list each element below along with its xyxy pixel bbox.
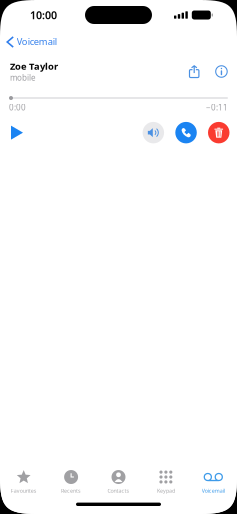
staticText: −0:11 xyxy=(206,102,228,113)
button[interactable]: Voicemail xyxy=(0,30,65,52)
staticText: mobile xyxy=(10,72,36,83)
staticText: 10:00 xyxy=(30,8,57,22)
staticText: 0:00 xyxy=(9,102,26,113)
button[interactable]: Speaker xyxy=(143,122,164,143)
button[interactable]: Play xyxy=(5,121,29,145)
button[interactable]: Favourites xyxy=(0,468,47,495)
staticText: Voicemail xyxy=(202,487,225,494)
staticText: Contacts xyxy=(107,487,129,494)
button[interactable]: Recents xyxy=(47,468,95,495)
button[interactable]: Delete xyxy=(208,122,229,143)
button[interactable]: Keypad xyxy=(142,468,190,495)
staticText: Recents xyxy=(61,487,81,494)
button[interactable]: Voicemail xyxy=(190,468,237,495)
staticText: Keypad xyxy=(157,487,175,494)
staticText: Favourites xyxy=(11,487,37,494)
button[interactable]: Call back xyxy=(175,122,197,143)
button[interactable]: Contacts xyxy=(95,468,142,495)
button[interactable]: Details xyxy=(211,62,232,81)
staticText: Zoe Taylor xyxy=(10,60,58,72)
staticText: Voicemail xyxy=(17,35,57,48)
button[interactable]: Share xyxy=(184,61,204,82)
